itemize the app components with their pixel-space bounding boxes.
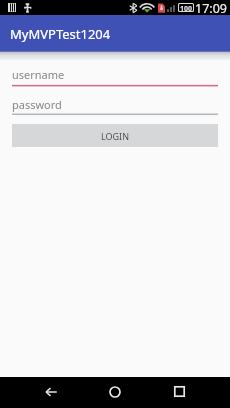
button[interactable]: Back [30, 376, 72, 407]
button[interactable]: LOGIN [12, 124, 218, 147]
staticText: password [12, 97, 62, 112]
staticText: MyMVPTest1204 [10, 25, 111, 43]
staticText: 17:09 [195, 0, 227, 15]
staticText: username [12, 67, 65, 82]
staticText: 100 [180, 4, 193, 11]
staticText: LOGIN [101, 130, 130, 142]
button[interactable]: Home [94, 376, 136, 407]
button[interactable]: Recents [158, 376, 200, 407]
